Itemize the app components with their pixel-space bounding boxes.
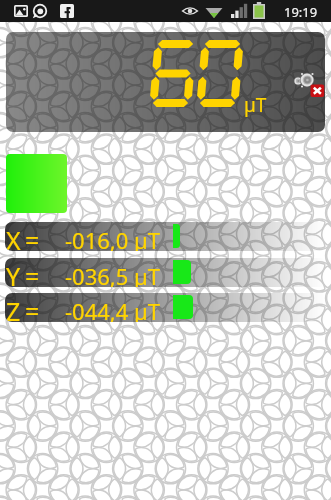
button[interactable]: X xyxy=(5,222,326,251)
staticText: -016,0 µT xyxy=(65,225,160,251)
button[interactable]: Y xyxy=(5,258,326,287)
button[interactable]: Sound off xyxy=(285,60,325,100)
staticText: Y xyxy=(6,259,21,287)
staticText: X xyxy=(6,223,21,251)
button[interactable]: µT xyxy=(6,32,325,132)
staticText: = xyxy=(25,259,40,287)
staticText: -036,5 µT xyxy=(65,261,160,287)
staticText: -044,4 µT xyxy=(65,296,160,322)
staticText: = xyxy=(25,223,40,251)
staticText: 19:19 xyxy=(284,3,318,21)
staticText: Z xyxy=(6,294,21,322)
staticText: µT xyxy=(244,92,267,118)
button[interactable] xyxy=(6,154,67,213)
button[interactable]: Z xyxy=(5,293,326,322)
staticText: = xyxy=(25,294,40,322)
